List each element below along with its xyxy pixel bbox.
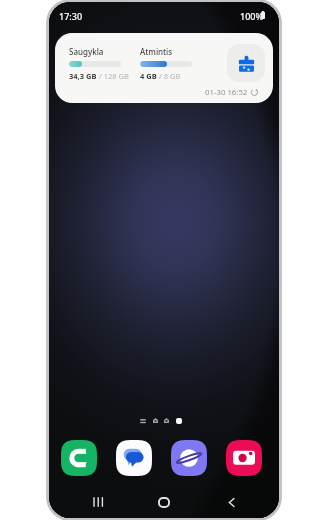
button[interactable]: App list [140, 418, 146, 424]
staticText: 01-30 16:52 [205, 87, 248, 98]
button[interactable]: Home page [153, 418, 158, 423]
button[interactable]: Clean memory [227, 44, 265, 82]
staticText: Atmintis [140, 46, 173, 57]
button[interactable]: Phone [61, 440, 97, 476]
button[interactable]: Messages [116, 440, 152, 476]
button[interactable]: Home [152, 490, 176, 514]
staticText: 34,3 GB [69, 71, 97, 81]
button[interactable]: Recent apps [85, 490, 109, 514]
staticText: 17:30 [59, 10, 83, 22]
staticText: / 128 GB [97, 71, 129, 81]
button[interactable]: Back [219, 490, 243, 514]
button[interactable]: Current page [176, 418, 182, 424]
staticText: Saugykla [69, 46, 104, 57]
button[interactable]: Camera [226, 440, 262, 476]
button[interactable]: Home page [164, 418, 169, 423]
staticText: 100% [240, 10, 264, 22]
staticText: / 8 GB [157, 71, 181, 81]
button[interactable]: Internet [171, 440, 207, 476]
button[interactable]: Saugykla [55, 33, 273, 103]
staticText: 4 GB [140, 71, 157, 81]
